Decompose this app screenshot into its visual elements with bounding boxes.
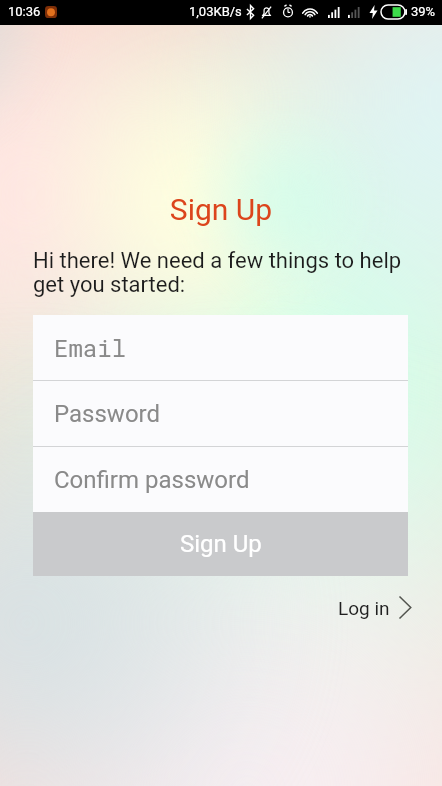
staticText: 1,03KB/s (189, 4, 242, 19)
staticText: Sign Up (180, 530, 262, 558)
staticText: Password (54, 400, 161, 428)
button[interactable]: Password (33, 381, 408, 446)
staticText: Sign Up (0, 192, 442, 227)
button[interactable]: Log in (329, 592, 433, 627)
staticText: Log in (338, 597, 390, 619)
staticText: Email (54, 332, 127, 364)
staticText: Confirm password (54, 466, 250, 494)
staticText: 39% (411, 4, 436, 19)
button[interactable]: Confirm password (33, 447, 408, 512)
button[interactable]: Email (33, 315, 408, 380)
staticText: Hi there! We need a few things to help g… (33, 248, 407, 297)
button[interactable]: Sign Up (33, 512, 408, 576)
staticText: 10:36 (8, 4, 41, 19)
